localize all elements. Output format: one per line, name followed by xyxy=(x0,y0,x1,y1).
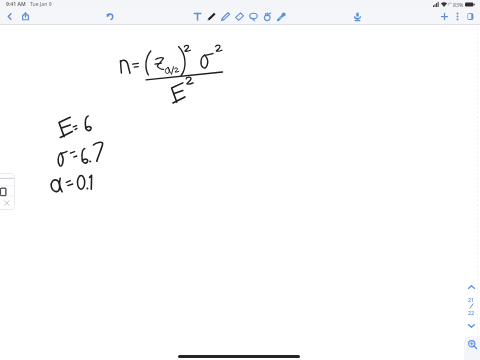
button[interactable]: Shapes xyxy=(261,9,273,24)
button[interactable]: Color picker xyxy=(275,9,287,24)
button[interactable]: Eraser xyxy=(233,9,245,24)
button[interactable]: Zoom in xyxy=(464,336,480,360)
button[interactable]: Add xyxy=(438,9,450,24)
button[interactable]: Share xyxy=(19,9,31,24)
button[interactable]: Previous page xyxy=(464,283,478,291)
button[interactable]: Lasso select xyxy=(247,9,259,24)
button[interactable]: Pen xyxy=(205,9,217,24)
staticText: 9:41 AM xyxy=(6,1,26,8)
button[interactable]: Back xyxy=(3,9,15,24)
button[interactable]: Next page xyxy=(464,322,478,330)
button[interactable]: Record audio xyxy=(351,9,363,24)
button[interactable]: Text tool xyxy=(191,9,203,24)
button[interactable]: Undo xyxy=(103,9,115,24)
staticText: 83% xyxy=(453,1,464,8)
button[interactable]: Highlighter xyxy=(219,9,231,24)
staticText: Tue Jan 9 xyxy=(30,1,52,8)
staticText: 21 xyxy=(468,296,475,303)
button[interactable]: Pen size xyxy=(0,173,15,210)
button[interactable]: Pages xyxy=(464,9,476,24)
staticText: 22 xyxy=(468,309,475,316)
button[interactable]: More options xyxy=(451,9,463,24)
